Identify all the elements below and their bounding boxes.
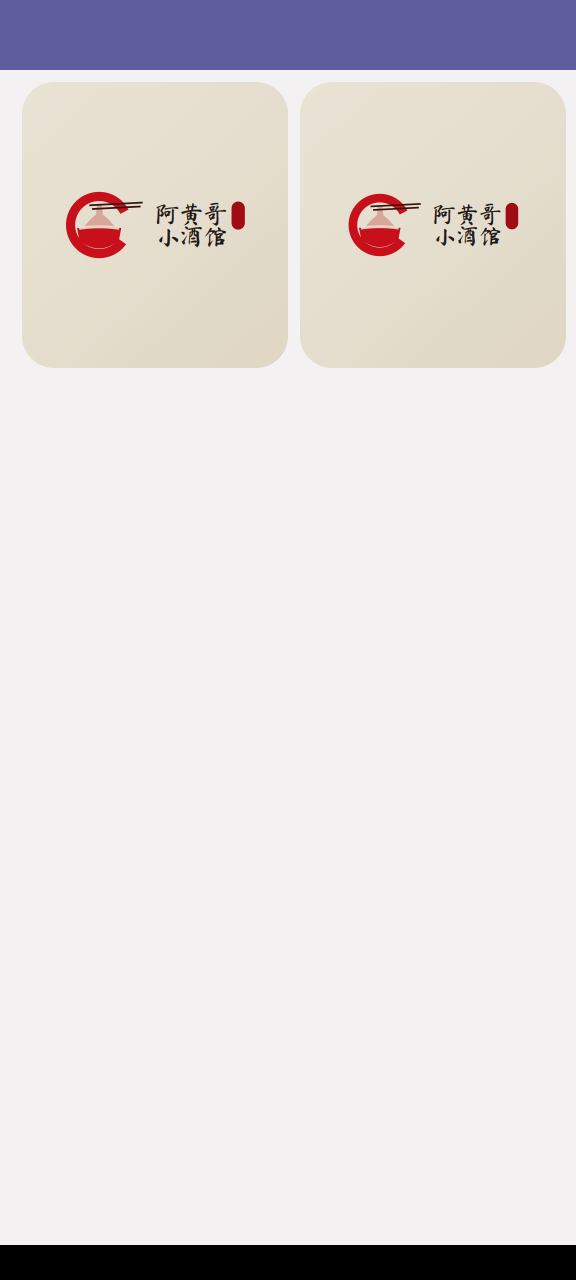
button[interactable]: 阿黄哥小酒馆	[22, 82, 288, 368]
staticText: 阿黄哥	[433, 203, 502, 225]
staticText: 小酒馆	[156, 224, 228, 248]
staticText: 阿黄哥	[156, 201, 228, 225]
button[interactable]: 阿黄哥小酒馆	[300, 82, 566, 368]
staticText: 小酒馆	[433, 224, 502, 247]
